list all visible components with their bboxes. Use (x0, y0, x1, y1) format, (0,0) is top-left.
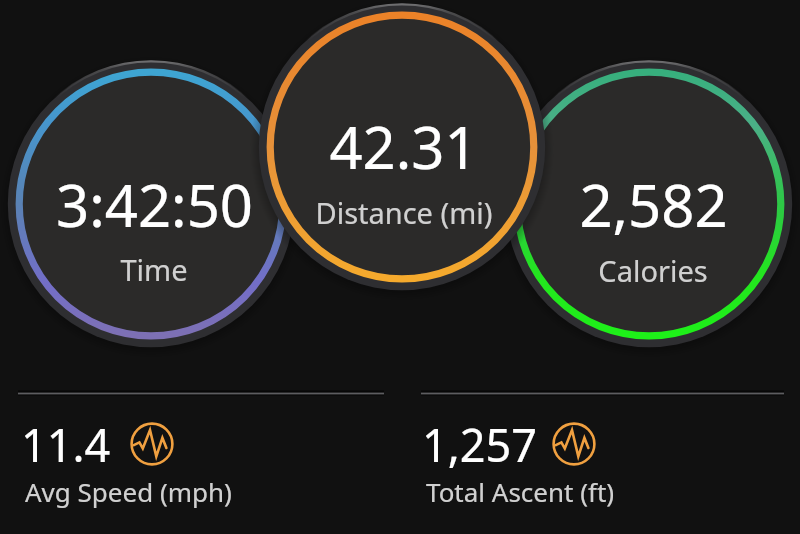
staticText: 1,257 (422, 414, 538, 475)
button[interactable]: 2,582 (493, 135, 800, 296)
button[interactable]: 3:42:50 (0, 135, 314, 295)
other: Activity graph (552, 422, 596, 466)
staticText: 2,582 (579, 165, 728, 244)
button[interactable]: 1,257 (422, 412, 800, 520)
other: Activity graph (130, 422, 174, 466)
staticText: Total Ascent (ft) (426, 474, 615, 509)
staticText: Distance (mi) (315, 193, 493, 232)
staticText: 3:42:50 (56, 165, 253, 244)
staticText: Avg Speed (mph) (25, 474, 232, 509)
button[interactable]: 42.31 (243, 77, 563, 238)
staticText: 42.31 (329, 107, 478, 186)
staticText: Calories (598, 251, 708, 290)
staticText: 11.4 (21, 414, 111, 475)
staticText: Time (120, 250, 188, 289)
button[interactable]: 11.4 (21, 412, 401, 520)
